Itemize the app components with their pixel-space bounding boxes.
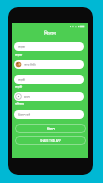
- button[interactable]: समय: [14, 92, 84, 101]
- button[interactable]: लड़का: [14, 42, 84, 51]
- staticText: जन्म तिथि: [24, 63, 36, 67]
- button[interactable]: जन्म तिथि: [14, 60, 84, 69]
- staticText: लड़का: [15, 53, 23, 57]
- button[interactable]: मिलान करें: [14, 110, 84, 119]
- staticText: लड़की: [18, 78, 26, 82]
- staticText: मिलान करें: [18, 113, 31, 117]
- staticText: लड़की: [15, 85, 23, 89]
- staticText: मिलान: [47, 127, 55, 131]
- staticText: लड़का: [18, 45, 26, 49]
- staticText: मिलान: [44, 30, 56, 37]
- button[interactable]: मिलान: [15, 124, 86, 133]
- staticText: SHARE THIS APP: [40, 139, 61, 143]
- staticText: समय: [24, 95, 30, 99]
- button[interactable]: लड़की: [14, 75, 84, 84]
- button[interactable]: SHARE THIS APP: [15, 136, 86, 145]
- staticText: परिणाम: [15, 102, 24, 106]
